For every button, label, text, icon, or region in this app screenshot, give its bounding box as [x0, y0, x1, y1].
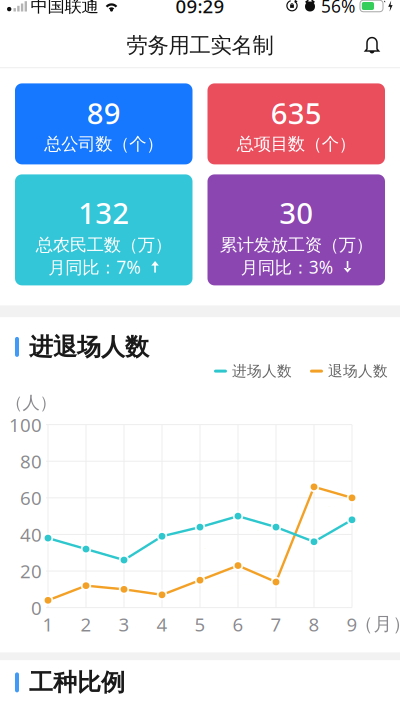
staticText: 5 — [194, 612, 205, 636]
button[interactable]: 30 — [207, 174, 385, 285]
staticText: 总公司数（个） — [44, 133, 163, 154]
staticText: 进场人数 — [232, 362, 292, 380]
button[interactable]: 635 — [207, 83, 385, 164]
staticText: 7 — [270, 612, 281, 636]
staticText: 40 — [20, 522, 42, 547]
staticText: 30 — [279, 193, 313, 232]
staticText: 56% — [321, 0, 355, 17]
button[interactable]: 132 — [15, 174, 192, 285]
staticText: （人） — [5, 392, 56, 413]
staticText: 80 — [20, 449, 42, 474]
staticText: 工种比例 — [29, 668, 125, 697]
staticText: 8 — [308, 612, 319, 636]
button[interactable]: Notifications — [350, 23, 394, 67]
staticText: 3 — [118, 612, 129, 636]
staticText: 退场人数 — [328, 362, 388, 380]
button[interactable]: 89 — [15, 83, 192, 164]
staticText: 6 — [232, 612, 243, 636]
staticText: （月） — [354, 613, 400, 636]
staticText: 1 — [42, 612, 53, 636]
staticText: 总农民工数（万） — [36, 234, 172, 255]
staticText: 2 — [80, 612, 91, 636]
staticText: 总项目数（个） — [237, 133, 356, 154]
staticText: 09:29 — [175, 0, 224, 18]
staticText: 累计发放工资（万） — [220, 234, 373, 255]
staticText: 20 — [20, 559, 42, 583]
staticText: 9 — [346, 612, 357, 636]
staticText: 132 — [78, 193, 129, 232]
staticText: 月同比：3% — [241, 255, 333, 278]
staticText: 635 — [271, 93, 322, 132]
staticText: 100 — [9, 412, 42, 437]
staticText: 劳务用工实名制 — [126, 32, 273, 58]
staticText: 89 — [87, 93, 121, 132]
staticText: 进退场人数 — [29, 332, 149, 362]
staticText: 0 — [31, 595, 42, 620]
staticText: 4 — [156, 612, 167, 636]
staticText: 月同比：7% — [48, 255, 140, 278]
staticText: 60 — [20, 485, 42, 510]
staticText: 中国联通 — [30, 0, 98, 17]
